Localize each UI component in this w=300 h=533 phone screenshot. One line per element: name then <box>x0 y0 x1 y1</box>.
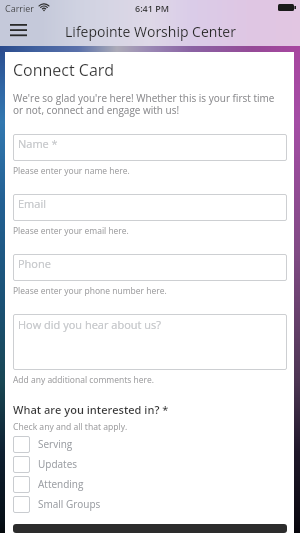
button[interactable]: Attending <box>13 474 287 494</box>
staticText: Please enter your email here. <box>13 225 129 237</box>
staticText: Email <box>18 196 46 211</box>
staticText: Name * <box>18 136 58 151</box>
staticText: Serving <box>38 437 73 451</box>
staticText: Attending <box>38 477 84 491</box>
staticText: Connect Card <box>13 59 115 81</box>
button[interactable]: Phone <box>13 254 287 281</box>
staticText: Add any additional comments here. <box>13 374 154 386</box>
button[interactable]: Serving <box>13 434 287 454</box>
staticText: Please enter your name here. <box>13 165 130 177</box>
staticText: Lifepointe Worship Center <box>65 22 236 41</box>
staticText: Check any and all that apply. <box>13 421 128 433</box>
button[interactable]: How did you hear about us? <box>13 314 287 370</box>
staticText: Updates <box>38 457 78 471</box>
staticText: We're so glad you're here! Whether this … <box>13 91 287 117</box>
staticText: Small Groups <box>38 497 101 511</box>
button[interactable] <box>13 524 287 533</box>
button[interactable]: Email <box>13 194 287 221</box>
button[interactable]: Name * <box>13 134 287 161</box>
staticText: Please enter your phone number here. <box>13 285 167 297</box>
staticText: Carrier <box>5 2 35 14</box>
button[interactable]: Small Groups <box>13 494 287 514</box>
staticText: 6:41 PM <box>135 2 170 14</box>
button[interactable]: Updates <box>13 454 287 474</box>
staticText: What are you interested in? * <box>13 402 169 417</box>
staticText: How did you hear about us? <box>18 317 162 332</box>
staticText: Phone <box>18 256 51 271</box>
button[interactable]: Menu <box>6 18 30 42</box>
